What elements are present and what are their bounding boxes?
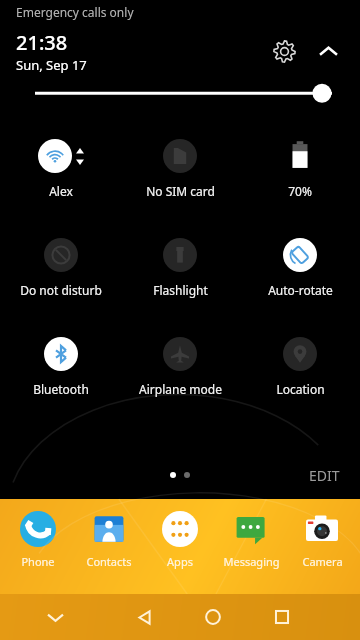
button[interactable]: Collapse [306, 29, 350, 73]
staticText: Location [276, 381, 325, 397]
button[interactable]: Contacts [76, 509, 142, 569]
button[interactable]: EDIT [289, 456, 360, 495]
button[interactable]: Messaging [218, 509, 284, 569]
staticText: 21:38 [16, 29, 68, 56]
staticText: Sun, Sep 17 [16, 56, 87, 74]
button[interactable]: No SIM card [121, 138, 239, 199]
staticText: Camera [302, 554, 343, 569]
button[interactable]: Phone [5, 509, 71, 569]
staticText: Flashlight [153, 282, 208, 298]
button[interactable]: Bluetooth [2, 336, 120, 397]
staticText: Alex [49, 183, 73, 199]
button[interactable]: 70% [241, 138, 359, 199]
button[interactable]: Brightness [0, 78, 360, 112]
button[interactable]: Alex [2, 138, 120, 199]
staticText: Messaging [223, 554, 280, 569]
button[interactable]: Apps [147, 509, 213, 569]
staticText: No SIM card [146, 183, 215, 199]
button[interactable]: Flashlight [121, 237, 239, 298]
button[interactable]: Do not disturb [2, 237, 120, 298]
button[interactable]: Airplane mode [121, 336, 239, 397]
button[interactable]: Recents [247, 594, 316, 640]
button[interactable]: Location [241, 336, 359, 397]
button[interactable]: Hide keyboard [0, 594, 110, 640]
staticText: Auto-rotate [268, 282, 333, 298]
button[interactable]: Back [110, 594, 178, 640]
staticText: Bluetooth [33, 381, 89, 397]
staticText: EDIT [309, 466, 340, 485]
button[interactable]: Home [178, 594, 247, 640]
staticText: Airplane mode [139, 381, 222, 397]
staticText: Emergency calls only [16, 4, 134, 20]
button[interactable]: Camera [289, 509, 355, 569]
staticText: Do not disturb [20, 282, 102, 298]
staticText: 70% [288, 183, 312, 199]
staticText: Contacts [86, 554, 132, 569]
button[interactable]: Settings [262, 29, 306, 73]
staticText: Phone [21, 554, 55, 569]
button[interactable]: Auto-rotate [241, 237, 359, 298]
staticText: Apps [167, 554, 193, 569]
